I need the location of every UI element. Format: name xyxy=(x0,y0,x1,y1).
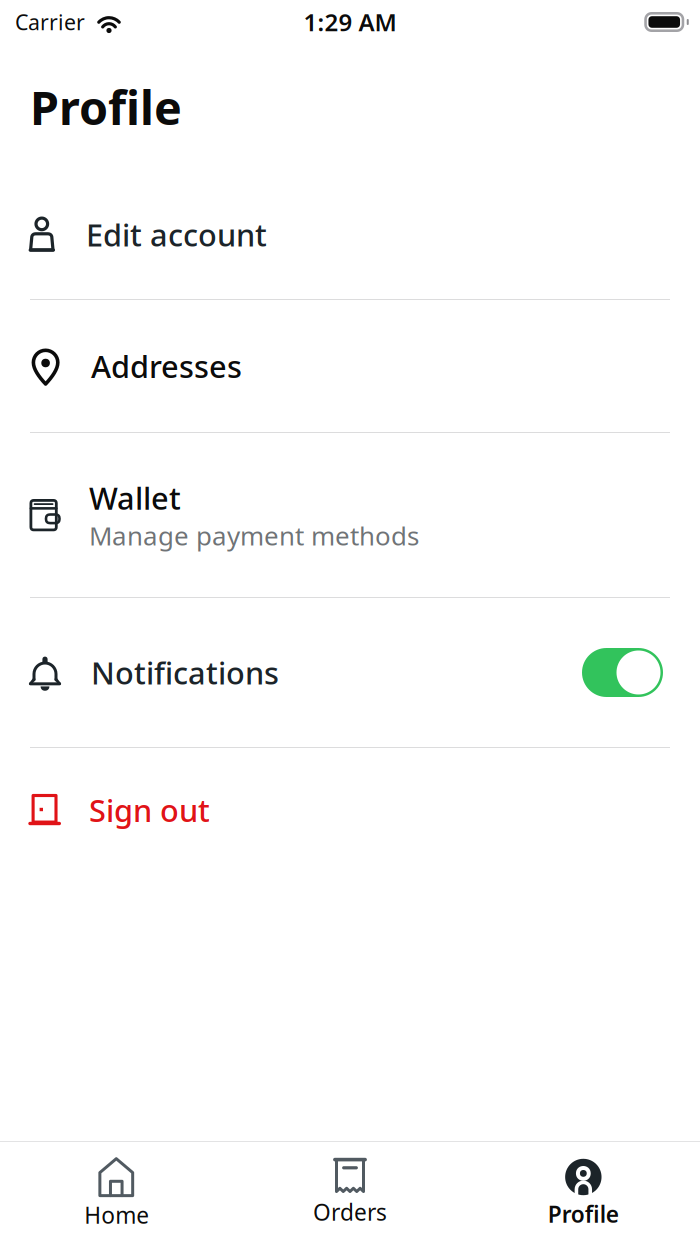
button[interactable]: Sign out xyxy=(0,748,700,872)
staticText: Orders xyxy=(313,1197,387,1227)
button[interactable]: Orders xyxy=(233,1142,467,1244)
staticText: Sign out xyxy=(89,790,210,830)
staticText: Edit account xyxy=(86,214,267,255)
button[interactable]: Wallet xyxy=(0,433,700,597)
button[interactable]: Profile xyxy=(467,1142,700,1244)
staticText: Home xyxy=(84,1200,149,1230)
staticText: Manage payment methods xyxy=(89,518,419,553)
staticText: Profile xyxy=(548,1199,619,1229)
staticText: Addresses xyxy=(91,346,242,386)
button[interactable]: Addresses xyxy=(0,300,700,432)
button[interactable]: Notifications xyxy=(0,598,700,747)
staticText: Wallet xyxy=(89,477,181,518)
button[interactable]: Home xyxy=(0,1142,233,1244)
staticText: 1:29 AM xyxy=(303,6,396,38)
staticText: Notifications xyxy=(91,652,279,693)
staticText: Carrier xyxy=(15,8,85,36)
staticText: Profile xyxy=(30,76,182,138)
button[interactable]: Edit account xyxy=(0,170,700,299)
